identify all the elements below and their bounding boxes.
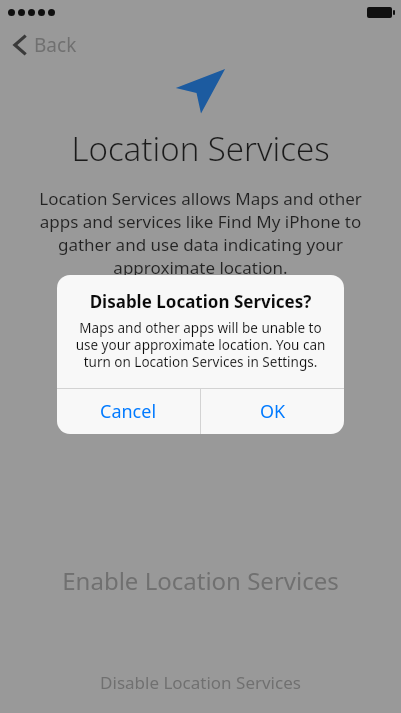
button[interactable]: Back	[6, 28, 83, 62]
staticText: Cancel	[100, 399, 157, 424]
button[interactable]: OK	[201, 389, 344, 434]
staticText: OK	[260, 399, 286, 424]
button[interactable]: Disable Location Services	[0, 665, 401, 700]
staticText: Disable Location Services?	[71, 290, 330, 313]
staticText: Location Services allows Maps and other …	[26, 187, 375, 279]
staticText: Enable Location Services	[62, 564, 339, 597]
staticText: Disable Location Services	[100, 671, 301, 694]
staticText: Back	[34, 32, 77, 58]
staticText: Maps and other apps will be unable to us…	[69, 319, 332, 371]
staticText: Location Services	[71, 126, 330, 171]
button[interactable]: Cancel	[57, 389, 200, 434]
button[interactable]: Enable Location Services	[0, 558, 401, 603]
